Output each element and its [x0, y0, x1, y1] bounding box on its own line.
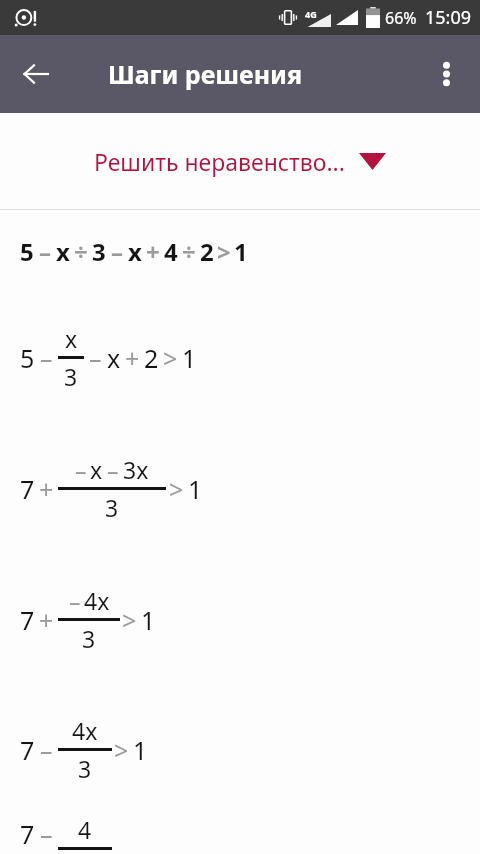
button[interactable]: 5	[0, 292, 480, 422]
staticText: 7	[20, 817, 35, 851]
button[interactable]: Back	[10, 48, 62, 100]
staticText: ÷	[182, 235, 196, 268]
staticText: x	[90, 454, 103, 485]
staticText: 1	[188, 472, 203, 506]
staticText: 1	[234, 235, 248, 268]
staticText: 5	[20, 341, 35, 375]
staticText: x	[128, 235, 142, 268]
staticText: 3	[92, 235, 106, 268]
staticText: –	[40, 817, 53, 851]
staticText: 15:09	[425, 5, 472, 30]
staticText: 2	[200, 235, 214, 268]
staticText: –	[39, 235, 51, 268]
staticText: x	[65, 323, 78, 354]
staticText: –	[40, 341, 53, 375]
staticText: 5	[20, 235, 34, 268]
staticText: –	[75, 454, 87, 485]
staticText: 4x	[72, 715, 98, 746]
staticText: Решить неравенство...	[94, 146, 345, 177]
button[interactable]: 7	[0, 814, 480, 854]
staticText: 3	[82, 623, 96, 654]
staticText: –	[40, 733, 53, 767]
button[interactable]: Решить неравенство...	[94, 146, 386, 177]
staticText: 4G	[305, 8, 317, 20]
staticText: +	[146, 235, 160, 268]
staticText: –	[69, 585, 81, 616]
staticText: 1	[141, 603, 156, 637]
staticText: –	[107, 454, 119, 485]
staticText: >	[122, 603, 137, 637]
staticText: >	[114, 733, 129, 767]
staticText: ÷	[74, 235, 88, 268]
staticText: 3x	[123, 454, 149, 485]
button[interactable]: More options	[420, 48, 472, 100]
staticText: 3	[78, 753, 92, 784]
staticText: 1	[133, 733, 148, 767]
staticText: x	[56, 235, 70, 268]
button[interactable]: 7	[0, 684, 480, 814]
staticText: +	[39, 603, 54, 637]
staticText: 7	[20, 603, 35, 637]
staticText: 2	[144, 341, 159, 375]
staticText: 4x	[84, 585, 110, 616]
staticText: x	[107, 341, 121, 375]
staticText: 3	[105, 492, 119, 523]
staticText: 7	[20, 472, 35, 506]
staticText: >	[169, 472, 184, 506]
staticText: +	[39, 472, 54, 506]
button[interactable]: 7	[0, 422, 480, 554]
staticText: +	[125, 341, 140, 375]
button[interactable]: 7	[0, 554, 480, 684]
staticText: 7	[20, 733, 35, 767]
staticText: 66%	[385, 7, 417, 29]
staticText: >	[163, 341, 178, 375]
staticText: –	[89, 341, 102, 375]
staticText: 4	[78, 814, 92, 845]
staticText: Шаги решения	[108, 57, 303, 91]
staticText: 1	[182, 341, 197, 375]
staticText: 3	[64, 361, 78, 392]
staticText: 4	[164, 235, 178, 268]
button[interactable]: 5	[0, 210, 480, 292]
staticText: –	[111, 235, 123, 268]
staticText: >	[217, 235, 231, 268]
